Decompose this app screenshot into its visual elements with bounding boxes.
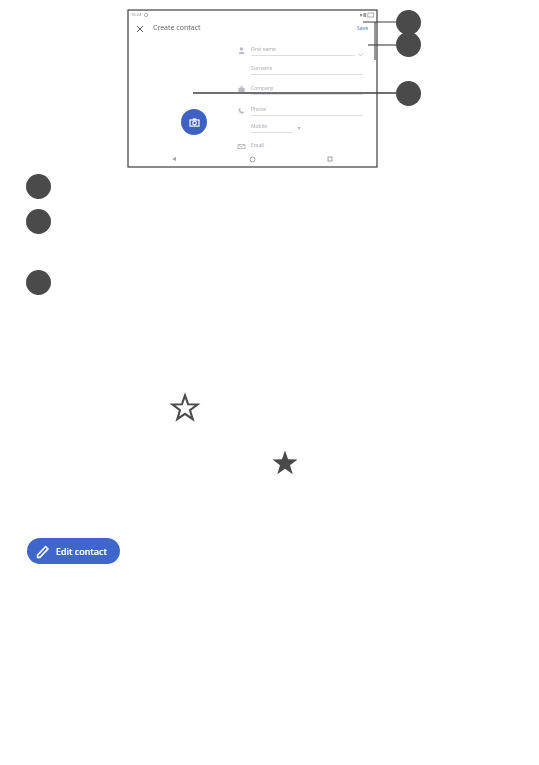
- button[interactable]: Company: [238, 84, 363, 95]
- button[interactable]: Home: [246, 153, 258, 165]
- button[interactable]: Favourite: [271, 449, 299, 477]
- button[interactable]: Back: [168, 153, 180, 165]
- button[interactable]: Surname: [238, 64, 363, 75]
- staticText: Save: [357, 25, 369, 32]
- button[interactable]: Edit contact: [27, 538, 120, 564]
- button[interactable]: Callout marker: [26, 209, 51, 234]
- staticText: Edit contact: [56, 545, 107, 557]
- button[interactable]: Callout marker: [396, 10, 421, 35]
- button[interactable]: Callout marker: [396, 32, 421, 57]
- button[interactable]: Mobile: [238, 122, 363, 133]
- button[interactable]: Callout marker: [396, 81, 421, 106]
- button[interactable]: Add photo: [181, 109, 207, 135]
- button[interactable]: Save: [355, 23, 371, 34]
- button[interactable]: Add to favourites: [171, 394, 199, 422]
- staticText: Email: [251, 142, 264, 149]
- button[interactable]: Recents: [324, 153, 336, 165]
- staticText: Company: [251, 85, 274, 92]
- button[interactable]: Callout marker: [26, 270, 51, 295]
- button[interactable]: Close: [134, 23, 145, 34]
- staticText: Mobile: [251, 123, 268, 130]
- button[interactable]: First name: [238, 45, 363, 56]
- staticText: Create contact: [153, 23, 201, 33]
- button[interactable]: Callout marker: [26, 174, 51, 199]
- button[interactable]: Email: [238, 142, 363, 151]
- staticText: First name: [251, 46, 276, 53]
- button[interactable]: Phone: [238, 105, 363, 116]
- staticText: Phone: [251, 106, 267, 113]
- staticText: Surname: [251, 65, 273, 72]
- staticText: 10:24: [131, 12, 142, 17]
